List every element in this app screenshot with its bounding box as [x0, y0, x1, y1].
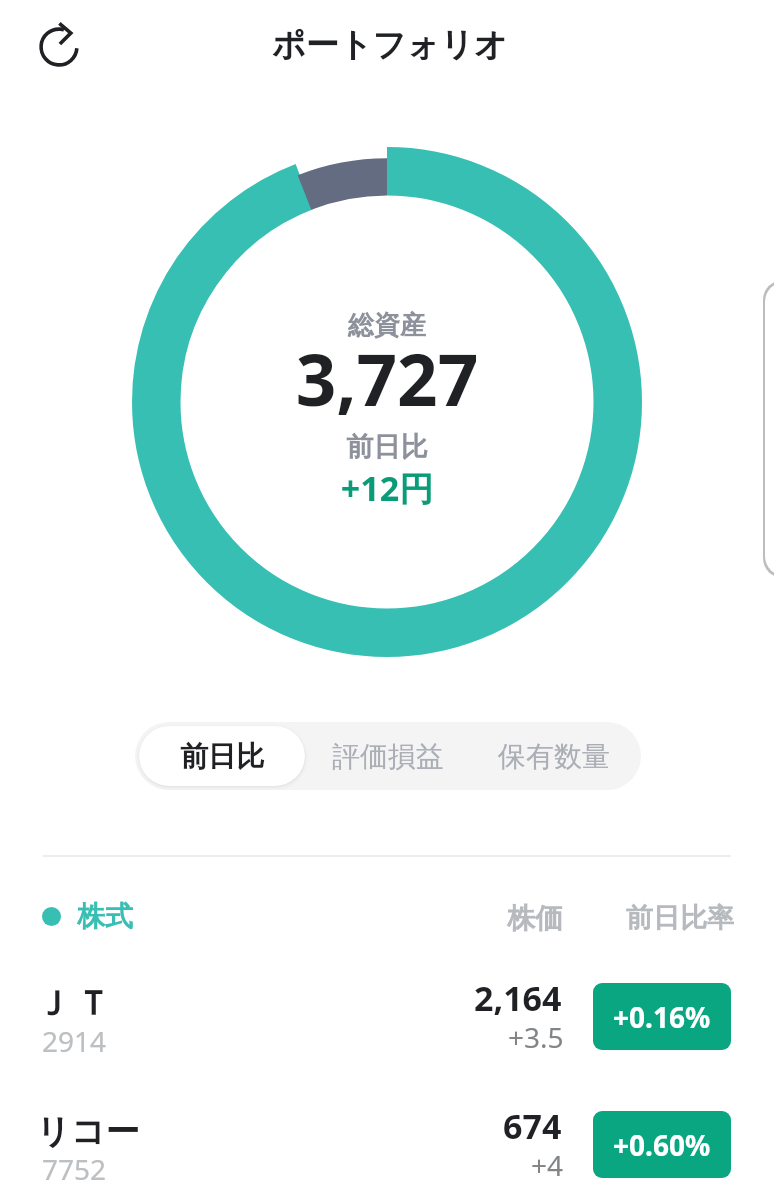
- staticText: +0.16%: [613, 998, 711, 1036]
- staticText: 前日比率: [626, 901, 734, 935]
- staticText: +4: [531, 1146, 564, 1180]
- button[interactable]: 前日比: [139, 726, 305, 786]
- button[interactable]: 評価損益: [305, 726, 471, 786]
- staticText: 総資産: [0, 309, 774, 342]
- staticText: ポートフォリオ: [272, 24, 508, 66]
- staticText: 674: [503, 1103, 562, 1149]
- staticText: 7752: [42, 1150, 107, 1187]
- staticText: 株式: [77, 899, 133, 934]
- staticText: 前日比: [0, 430, 774, 464]
- button[interactable]: 保有数量: [471, 726, 637, 786]
- staticText: ＪＴ: [33, 982, 113, 1025]
- staticText: 2914: [42, 1022, 107, 1059]
- staticText: 前日比: [180, 739, 264, 774]
- staticText: 2,164: [474, 975, 562, 1021]
- staticText: 株価: [507, 901, 563, 936]
- button[interactable]: リコー: [0, 1111, 774, 1191]
- button[interactable]: ＪＴ: [0, 983, 774, 1063]
- staticText: 評価損益: [332, 739, 444, 774]
- staticText: 3,727: [0, 330, 774, 427]
- staticText: 保有数量: [498, 739, 610, 774]
- button[interactable]: 株式: [42, 899, 133, 934]
- staticText: +0.60%: [613, 1126, 711, 1164]
- staticText: リコー: [36, 1110, 140, 1153]
- staticText: +3.5: [508, 1018, 564, 1052]
- staticText: +12円: [0, 465, 774, 511]
- button[interactable]: Refresh: [28, 16, 90, 78]
